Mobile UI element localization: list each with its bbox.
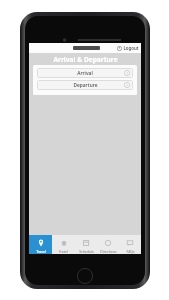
button[interactable]: Schedule — [75, 235, 97, 254]
staticText: Hotel — [59, 249, 68, 254]
button[interactable]: Departure — [37, 80, 133, 90]
staticText: Directions — [100, 249, 117, 254]
staticText: Arrival & Departure — [53, 55, 118, 64]
button[interactable]: FAQs — [119, 235, 141, 254]
staticText: Departure — [73, 82, 98, 89]
other: FAQs — [126, 239, 134, 247]
staticText: Travel — [36, 249, 46, 254]
staticText: FAQs — [126, 249, 135, 254]
button[interactable]: Logout — [117, 45, 139, 51]
staticText: Arrival — [77, 70, 93, 77]
staticText: Schedule — [79, 249, 94, 254]
button[interactable]: Travel — [29, 235, 52, 254]
other: Directions — [104, 239, 112, 247]
other: Logout — [117, 46, 122, 51]
other: Travel — [37, 239, 45, 247]
button[interactable]: Hotel — [52, 235, 75, 254]
button[interactable]: Directions — [97, 235, 119, 254]
button[interactable]: App logo — [73, 46, 100, 50]
other: Hotel — [60, 239, 68, 247]
staticText: Logout — [123, 45, 139, 51]
other: Schedule — [82, 239, 90, 247]
button[interactable]: Arrival — [37, 68, 133, 78]
